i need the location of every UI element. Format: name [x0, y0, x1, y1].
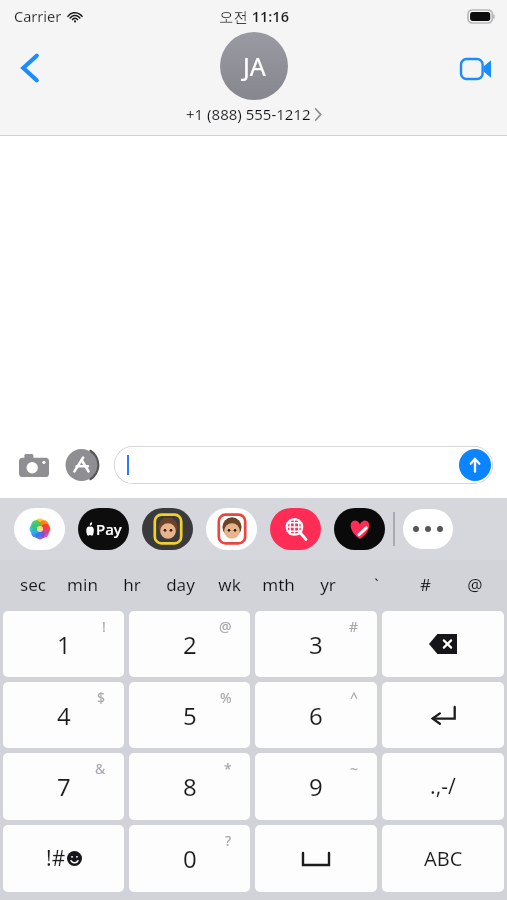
button[interactable]: JA: [186, 32, 321, 124]
button[interactable]: Stickers: [206, 508, 257, 550]
staticText: .,-/: [430, 772, 456, 801]
button[interactable]: 1: [3, 611, 124, 677]
staticText: 1: [57, 628, 71, 661]
button[interactable]: mth: [254, 560, 303, 608]
staticText: Pay: [96, 519, 122, 539]
button[interactable]: App Store: [64, 446, 102, 484]
staticText: min: [67, 573, 98, 596]
staticText: ^: [350, 688, 359, 707]
other: Delete: [429, 634, 457, 654]
button[interactable]: .,-/: [382, 753, 504, 820]
other: Return: [430, 705, 456, 725]
button[interactable]: 5: [129, 682, 250, 748]
button[interactable]: 2: [129, 611, 250, 677]
staticText: 6: [309, 699, 323, 732]
staticText: 3: [309, 628, 323, 661]
staticText: !: [102, 617, 106, 636]
staticText: sec: [20, 573, 46, 596]
button[interactable]: Camera: [14, 445, 54, 485]
staticText: 7: [57, 770, 71, 803]
button[interactable]: Fitness: [334, 508, 385, 550]
button[interactable]: 4: [3, 682, 124, 748]
button[interactable]: Send: [114, 446, 493, 484]
button[interactable]: Return: [382, 682, 504, 748]
staticText: mth: [262, 573, 295, 596]
button[interactable]: 6: [255, 682, 377, 748]
staticText: #: [349, 617, 359, 636]
button[interactable]: @: [450, 560, 499, 608]
button[interactable]: 3: [255, 611, 377, 677]
staticText: `: [374, 573, 379, 596]
staticText: *: [224, 759, 232, 778]
button[interactable]: Space: [255, 825, 377, 892]
button[interactable]: Images: [270, 508, 321, 550]
button[interactable]: 9: [255, 753, 377, 820]
button[interactable]: 0: [129, 825, 250, 892]
button[interactable]: 8: [129, 753, 250, 820]
button[interactable]: sec: [8, 560, 58, 608]
button[interactable]: Back: [8, 46, 52, 90]
staticText: 오전 11:16: [219, 6, 289, 26]
staticText: Carrier: [14, 6, 62, 26]
staticText: 2: [183, 628, 197, 661]
staticText: ?: [225, 831, 232, 850]
staticText: $: [97, 688, 106, 707]
staticText: @: [219, 617, 232, 636]
button[interactable]: Memoji: [142, 508, 193, 550]
staticText: JA: [243, 49, 266, 83]
staticText: #: [420, 573, 431, 596]
staticText: &: [95, 759, 106, 778]
staticText: ABC: [424, 845, 463, 872]
button[interactable]: wk: [205, 560, 254, 608]
staticText: wk: [218, 573, 241, 596]
button[interactable]: `: [352, 560, 401, 608]
button[interactable]: FaceTime video call: [453, 46, 499, 92]
other: Space: [303, 853, 329, 865]
staticText: yr: [320, 573, 336, 596]
button[interactable]: #: [401, 560, 450, 608]
staticText: 8: [183, 770, 197, 803]
button[interactable]: Send: [459, 449, 491, 481]
button[interactable]: day: [156, 560, 205, 608]
button[interactable]: Photos: [14, 508, 65, 550]
staticText: 5: [183, 699, 197, 732]
staticText: 9: [309, 770, 323, 803]
button[interactable]: yr: [303, 560, 352, 608]
button[interactable]: !#: [3, 825, 124, 892]
staticText: ~: [350, 759, 359, 778]
staticText: hr: [123, 573, 141, 596]
staticText: !#: [46, 844, 66, 873]
button[interactable]: More apps: [403, 509, 453, 549]
button[interactable]: 7: [3, 753, 124, 820]
staticText: 0: [183, 842, 197, 875]
button[interactable]: hr: [107, 560, 156, 608]
button[interactable]: Apple Pay: [78, 508, 129, 550]
staticText: day: [166, 573, 195, 596]
button[interactable]: min: [58, 560, 107, 608]
staticText: +1 (888) 555-1212: [186, 104, 311, 124]
staticText: 4: [57, 699, 71, 732]
button[interactable]: ABC: [382, 825, 504, 892]
staticText: %: [220, 688, 232, 707]
staticText: @: [467, 573, 483, 596]
button[interactable]: Delete: [382, 611, 504, 677]
